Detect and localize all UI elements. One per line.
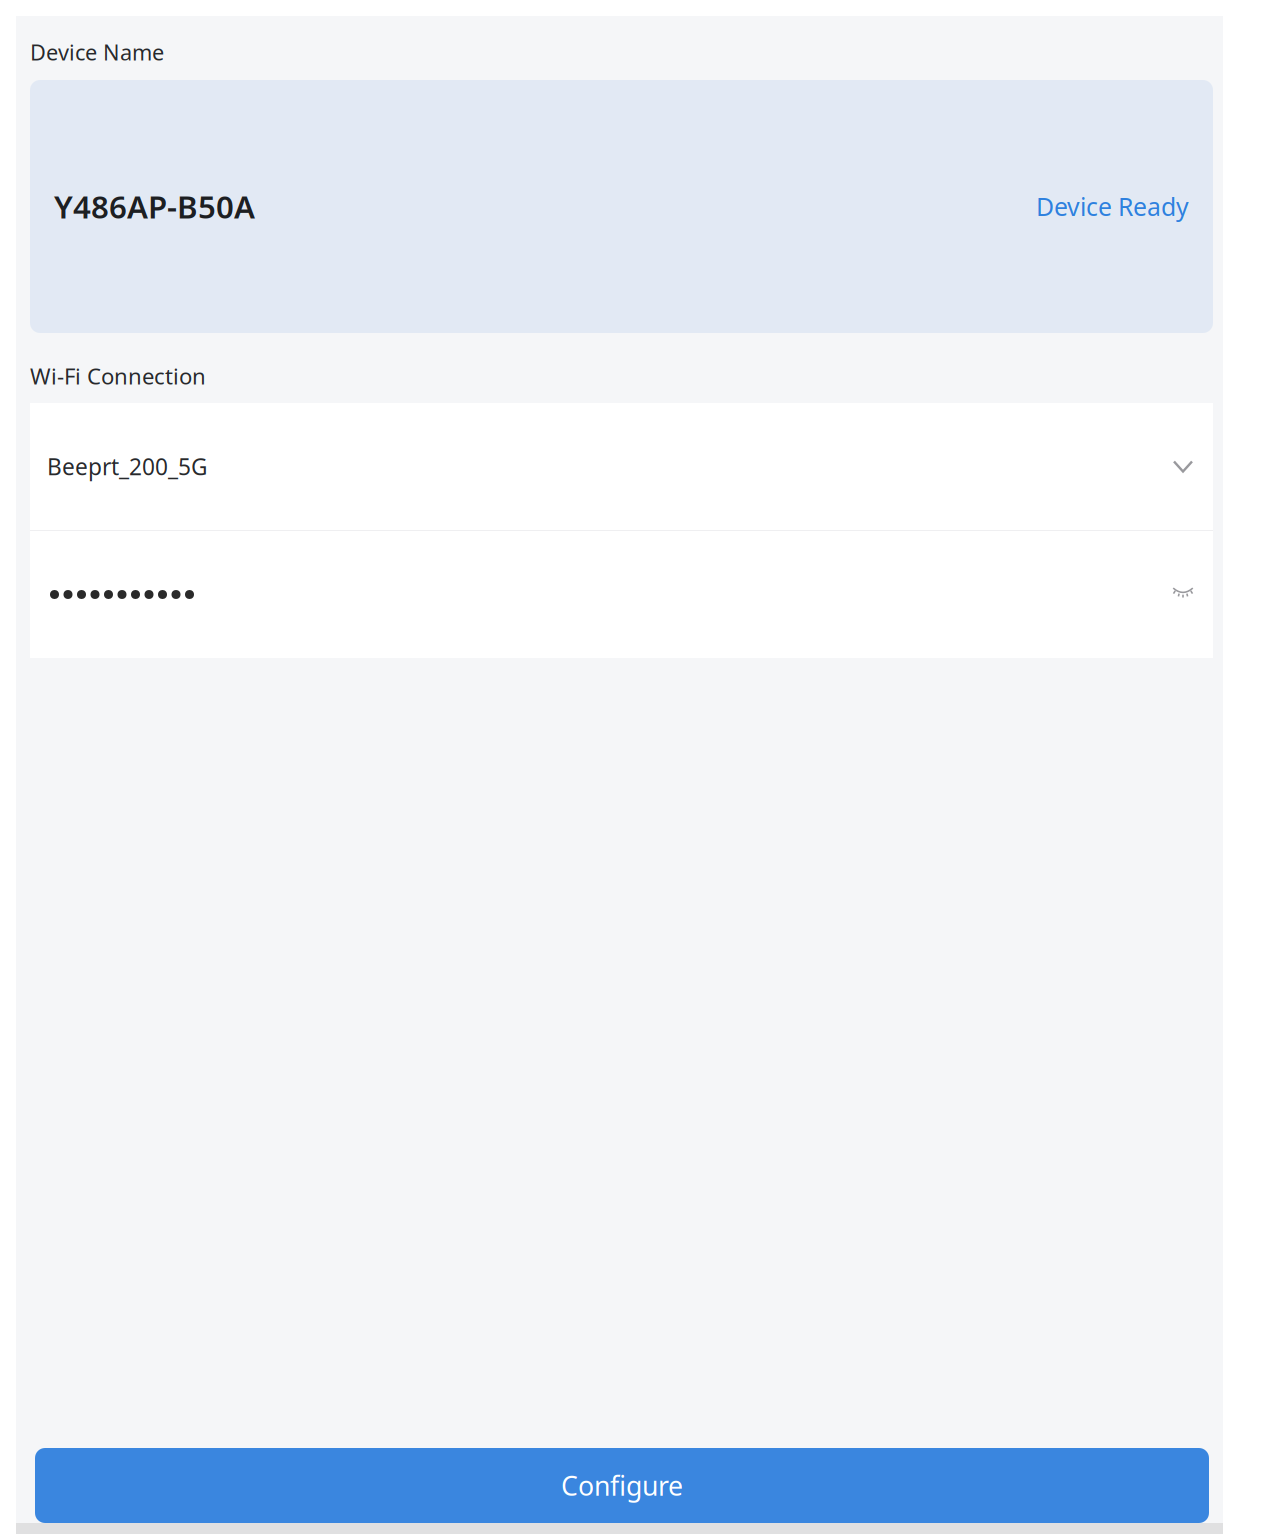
button[interactable]: Beeprt_200_5G — [30, 403, 1213, 530]
staticText: Device Ready — [1036, 190, 1189, 223]
staticText: Device Name — [30, 37, 164, 67]
staticText: Wi-Fi Connection — [30, 361, 206, 391]
button[interactable]: Show password — [1170, 581, 1196, 607]
button[interactable]: Configure — [35, 1448, 1209, 1523]
staticText: Configure — [561, 1468, 683, 1503]
button[interactable]: Choose Wi-Fi network — [1170, 453, 1196, 479]
staticText: Beeprt_200_5G — [47, 451, 208, 481]
button[interactable] — [30, 531, 1213, 658]
staticText: Y486AP-B50A — [54, 185, 255, 228]
